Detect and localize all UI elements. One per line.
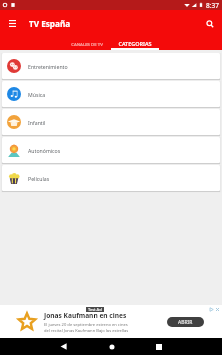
staticText: Películas [28, 175, 50, 182]
staticText: Entretenimiento [28, 63, 68, 70]
staticText: CATEGORIAS [118, 40, 152, 47]
staticText: ABRIR [178, 319, 193, 326]
button[interactable]: CANALES DE TV [63, 37, 111, 50]
button[interactable]: Open navigation drawer [0, 10, 24, 37]
button[interactable]: Entretenimiento [2, 53, 220, 79]
button[interactable]: CATEGORIAS [111, 37, 159, 50]
staticText: 8:37 [206, 1, 219, 10]
staticText: CANALES DE TV [71, 41, 103, 47]
button[interactable]: ABRIR [167, 317, 204, 327]
staticText: El jueves 20 de septiembre estreno en ci… [44, 322, 128, 328]
button[interactable]: Search [198, 10, 222, 37]
staticText: Autonómicos [28, 147, 61, 154]
button[interactable]: Películas [2, 165, 220, 191]
staticText: Jonas Kaufmann en cines [44, 311, 127, 320]
staticText: Test Ad [88, 307, 102, 312]
button[interactable]: Home [103, 338, 120, 355]
button[interactable]: Infantil [2, 109, 220, 135]
button[interactable]: Música [2, 81, 220, 107]
staticText: del recital Jonas Kaufmann Bajo las estr… [44, 328, 129, 334]
button[interactable]: Autonómicos [2, 137, 220, 163]
button[interactable]: Back [55, 338, 72, 355]
staticText: Infantil [28, 119, 46, 126]
staticText: TV España [29, 18, 71, 29]
staticText: Música [28, 91, 46, 98]
button[interactable]: Recent apps [150, 338, 167, 355]
